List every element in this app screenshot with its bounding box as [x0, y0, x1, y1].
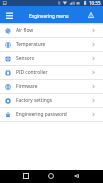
staticText: Sensors	[16, 55, 84, 62]
button[interactable]: Air flow	[0, 24, 103, 38]
staticText: Temperature	[16, 41, 84, 48]
staticText: Firmware	[16, 83, 84, 90]
button[interactable]: Home	[38, 170, 64, 183]
button[interactable]: PID controller	[0, 66, 103, 80]
button[interactable]: Back	[64, 170, 90, 183]
button[interactable]: Engineering password	[0, 108, 103, 122]
button[interactable]: Factory settings	[0, 94, 103, 108]
button[interactable]: Temperature	[0, 38, 103, 52]
button[interactable]: Sensors	[0, 52, 103, 66]
staticText: PID controller	[16, 69, 84, 76]
button[interactable]: Open navigation menu	[0, 6, 18, 23]
staticText: 10:35	[89, 0, 101, 6]
staticText: Factory settings	[16, 97, 84, 104]
button[interactable]: Recent apps	[13, 170, 38, 183]
button[interactable]: Warnings	[78, 6, 103, 23]
staticText: Engineering menu	[29, 13, 69, 19]
staticText: Engineering password	[16, 111, 84, 118]
button[interactable]: Firmware	[0, 80, 103, 94]
staticText: Air flow	[16, 27, 84, 34]
